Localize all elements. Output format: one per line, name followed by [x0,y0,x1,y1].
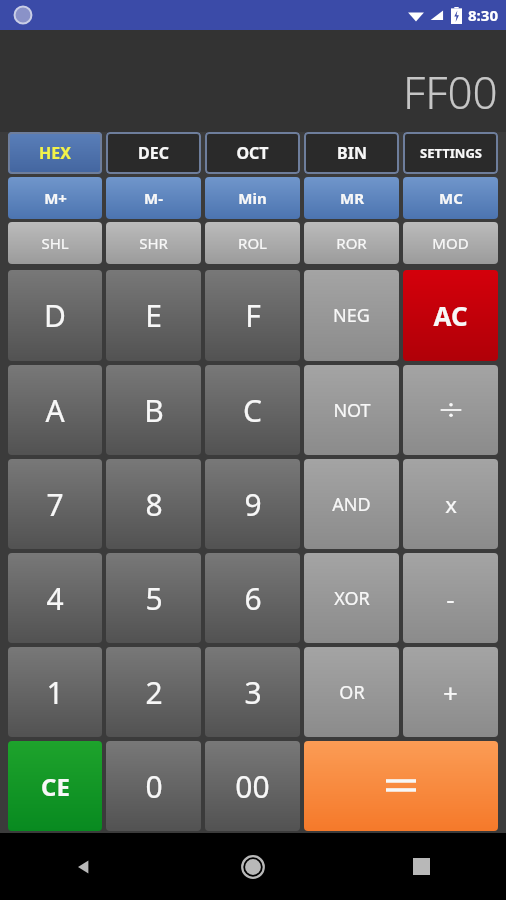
staticText: XOR [334,586,370,611]
staticText: x [445,489,457,519]
button[interactable]: E [106,270,201,361]
staticText: 1 [46,672,64,713]
staticText: 00 [235,766,270,807]
staticText: 5 [145,578,163,619]
button[interactable]: B [106,365,201,455]
staticText: 4 [46,578,64,619]
button[interactable]: ROL [205,222,300,264]
button[interactable]: AND [304,459,399,549]
button[interactable]: 7 [8,459,102,549]
button[interactable]: M- [106,177,201,219]
button[interactable]: CE [8,741,102,831]
button[interactable]: + [403,647,498,737]
staticText: MR [340,188,364,208]
staticText: C [243,390,262,431]
button[interactable]: MOD [403,222,498,264]
button[interactable]: Back [0,833,168,900]
staticText: 8 [145,484,163,525]
other: Equals [386,777,416,795]
staticText: 3 [244,672,262,713]
staticText: NEG [333,303,370,328]
button[interactable]: x [403,459,498,549]
button[interactable]: Recents [337,833,506,900]
staticText: + [443,675,458,710]
button[interactable]: 9 [205,459,300,549]
button[interactable]: DEC [106,132,201,174]
button[interactable]: ROR [304,222,399,264]
staticText: AC [433,298,468,333]
staticText: F [245,295,261,336]
staticText: OCT [236,142,269,164]
button[interactable]: SETTINGS [403,132,498,174]
button[interactable]: 6 [205,553,300,643]
button[interactable]: NOT [304,365,399,455]
staticText: OR [339,680,365,705]
other: Divide [438,397,464,423]
button[interactable]: M+ [8,177,102,219]
staticText: D [44,295,66,336]
button[interactable]: 5 [106,553,201,643]
button[interactable]: OR [304,647,399,737]
staticText: M- [144,188,163,208]
staticText: 6 [244,578,262,619]
button[interactable]: F [205,270,300,361]
staticText: - [446,581,455,616]
staticText: BIN [337,142,367,164]
button[interactable]: 0 [106,741,201,831]
button[interactable]: 2 [106,647,201,737]
button[interactable]: Min [205,177,300,219]
button[interactable]: 4 [8,553,102,643]
button[interactable]: A [8,365,102,455]
button[interactable]: 00 [205,741,300,831]
staticText: MOD [432,233,469,253]
button[interactable]: MC [403,177,498,219]
button[interactable]: C [205,365,300,455]
staticText: SHR [139,233,168,253]
staticText: ROL [238,233,267,253]
button[interactable]: MR [304,177,399,219]
button[interactable]: AC [403,270,498,361]
button[interactable]: 8 [106,459,201,549]
staticText: E [145,295,162,336]
button[interactable]: D [8,270,102,361]
button[interactable]: SHR [106,222,201,264]
staticText: FF00 [403,62,498,122]
button[interactable]: XOR [304,553,399,643]
staticText: Min [238,188,267,208]
button[interactable]: OCT [205,132,300,174]
staticText: AND [332,492,371,517]
button[interactable]: - [403,553,498,643]
staticText: SETTINGS [420,144,482,162]
staticText: 7 [46,484,64,525]
staticText: SHL [41,233,69,253]
staticText: B [144,390,164,431]
staticText: 2 [145,672,163,713]
staticText: CE [41,770,70,803]
staticText: HEX [39,142,71,164]
button[interactable]: Home [168,833,337,900]
button[interactable]: Equals [304,741,498,831]
staticText: NOT [333,398,371,423]
button[interactable]: Divide [403,365,498,455]
staticText: A [45,390,65,431]
button[interactable]: BIN [304,132,399,174]
staticText: 9 [244,484,262,525]
staticText: M+ [44,188,67,208]
staticText: ROR [336,233,367,253]
button[interactable]: SHL [8,222,102,264]
staticText: MC [439,188,463,208]
button[interactable]: HEX [8,132,102,174]
button[interactable]: 1 [8,647,102,737]
button[interactable]: 3 [205,647,300,737]
staticText: 8:30 [468,5,498,25]
staticText: 0 [145,766,163,807]
staticText: DEC [138,142,169,164]
button[interactable]: NEG [304,270,399,361]
